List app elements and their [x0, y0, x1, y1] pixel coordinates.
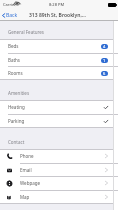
staticText: 6 — [103, 71, 106, 76]
button[interactable]: Webpage — [0, 176, 114, 190]
button[interactable]: Phone — [0, 149, 114, 163]
staticText: General Features — [8, 29, 45, 35]
staticText: Phone — [20, 153, 34, 159]
staticText: Heating — [8, 104, 25, 110]
staticText: Carrier — [3, 2, 17, 7]
staticText: 8:28 PM — [49, 2, 65, 7]
staticText: Map — [20, 194, 30, 200]
button[interactable]: Baths — [0, 53, 114, 67]
staticText: Amenities — [8, 90, 30, 96]
staticText: Parking — [8, 118, 25, 124]
staticText: Contact — [8, 139, 25, 145]
staticText: Baths — [8, 57, 21, 63]
button[interactable]: Rooms — [0, 66, 114, 80]
button[interactable]: Back — [1, 10, 18, 20]
button[interactable]: Parking — [0, 114, 114, 128]
staticText: 1 — [103, 58, 106, 63]
staticText: 4 — [103, 44, 106, 49]
staticText: Back — [6, 12, 18, 19]
staticText: Rooms — [8, 70, 23, 76]
staticText: Webpage — [20, 180, 40, 186]
staticText: Email — [20, 167, 32, 173]
staticText: 313 89th St, Brooklyn,... — [29, 12, 86, 19]
button[interactable]: Heating — [0, 100, 114, 114]
button[interactable]: Beds — [0, 39, 114, 53]
button[interactable]: Map — [0, 190, 114, 204]
staticText: Beds — [8, 43, 19, 49]
button[interactable]: Email — [0, 163, 114, 177]
